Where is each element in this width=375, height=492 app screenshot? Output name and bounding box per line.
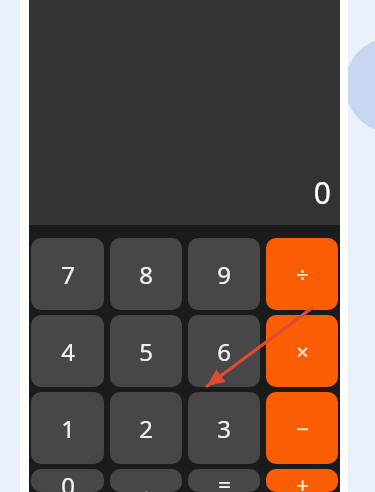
staticText: ×: [296, 336, 309, 366]
staticText: 6: [217, 335, 231, 368]
staticText: =: [218, 469, 231, 492]
button[interactable]: .: [110, 469, 182, 492]
staticText: 9: [217, 258, 231, 291]
button[interactable]: 2: [110, 392, 182, 464]
staticText: 4: [61, 335, 75, 368]
staticText: 8: [139, 258, 153, 291]
staticText: 5: [139, 335, 153, 368]
staticText: .: [143, 469, 150, 492]
button[interactable]: =: [188, 469, 260, 492]
button[interactable]: 3: [188, 392, 260, 464]
button[interactable]: ×: [266, 315, 338, 387]
button[interactable]: +: [266, 469, 338, 492]
staticText: −: [296, 413, 309, 443]
staticText: 0: [61, 469, 75, 492]
button[interactable]: −: [266, 392, 338, 464]
staticText: ÷: [296, 259, 309, 289]
staticText: 0: [313, 172, 331, 213]
staticText: +: [296, 469, 309, 492]
button[interactable]: 7: [31, 238, 104, 310]
staticText: 3: [217, 412, 231, 445]
button[interactable]: 0: [31, 469, 104, 492]
button[interactable]: 5: [110, 315, 182, 387]
button[interactable]: 9: [188, 238, 260, 310]
button[interactable]: 4: [31, 315, 104, 387]
button[interactable]: ÷: [266, 238, 338, 310]
button[interactable]: 8: [110, 238, 182, 310]
staticText: 2: [139, 412, 153, 445]
button[interactable]: 6: [188, 315, 260, 387]
staticText: 1: [61, 412, 75, 445]
button[interactable]: 1: [31, 392, 104, 464]
staticText: 7: [61, 258, 75, 291]
